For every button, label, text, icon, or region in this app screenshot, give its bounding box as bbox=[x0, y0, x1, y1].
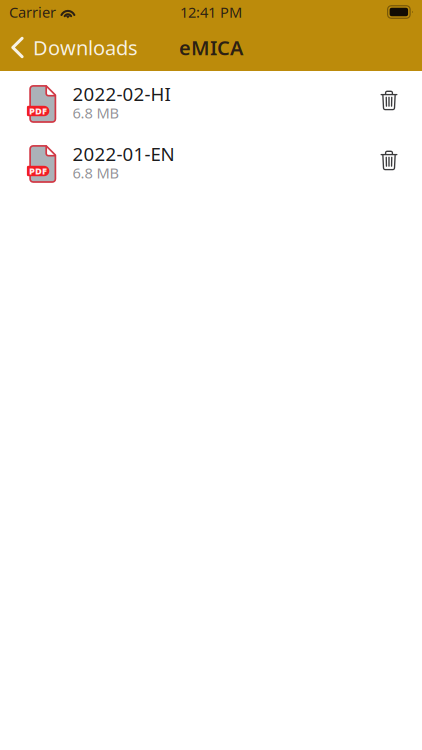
staticText: 6.8 MB bbox=[72, 163, 119, 183]
staticText: 2022-01-EN bbox=[72, 141, 174, 166]
staticText: Carrier bbox=[9, 2, 56, 22]
button[interactable]: Downloads bbox=[0, 28, 146, 67]
staticText: 12:41 PM bbox=[180, 2, 242, 22]
staticText: PDF bbox=[29, 105, 47, 117]
staticText: 6.8 MB bbox=[72, 103, 119, 123]
staticText: Downloads bbox=[33, 34, 138, 61]
staticText: eMICA bbox=[179, 34, 243, 61]
button[interactable]: Delete 2022-02-HI bbox=[367, 79, 411, 129]
staticText: 2022-02-HI bbox=[72, 81, 170, 106]
staticText: PDF bbox=[29, 165, 47, 177]
button[interactable]: PDF bbox=[0, 74, 367, 134]
button[interactable]: Delete 2022-01-EN bbox=[367, 139, 411, 189]
button[interactable]: PDF bbox=[0, 134, 367, 194]
